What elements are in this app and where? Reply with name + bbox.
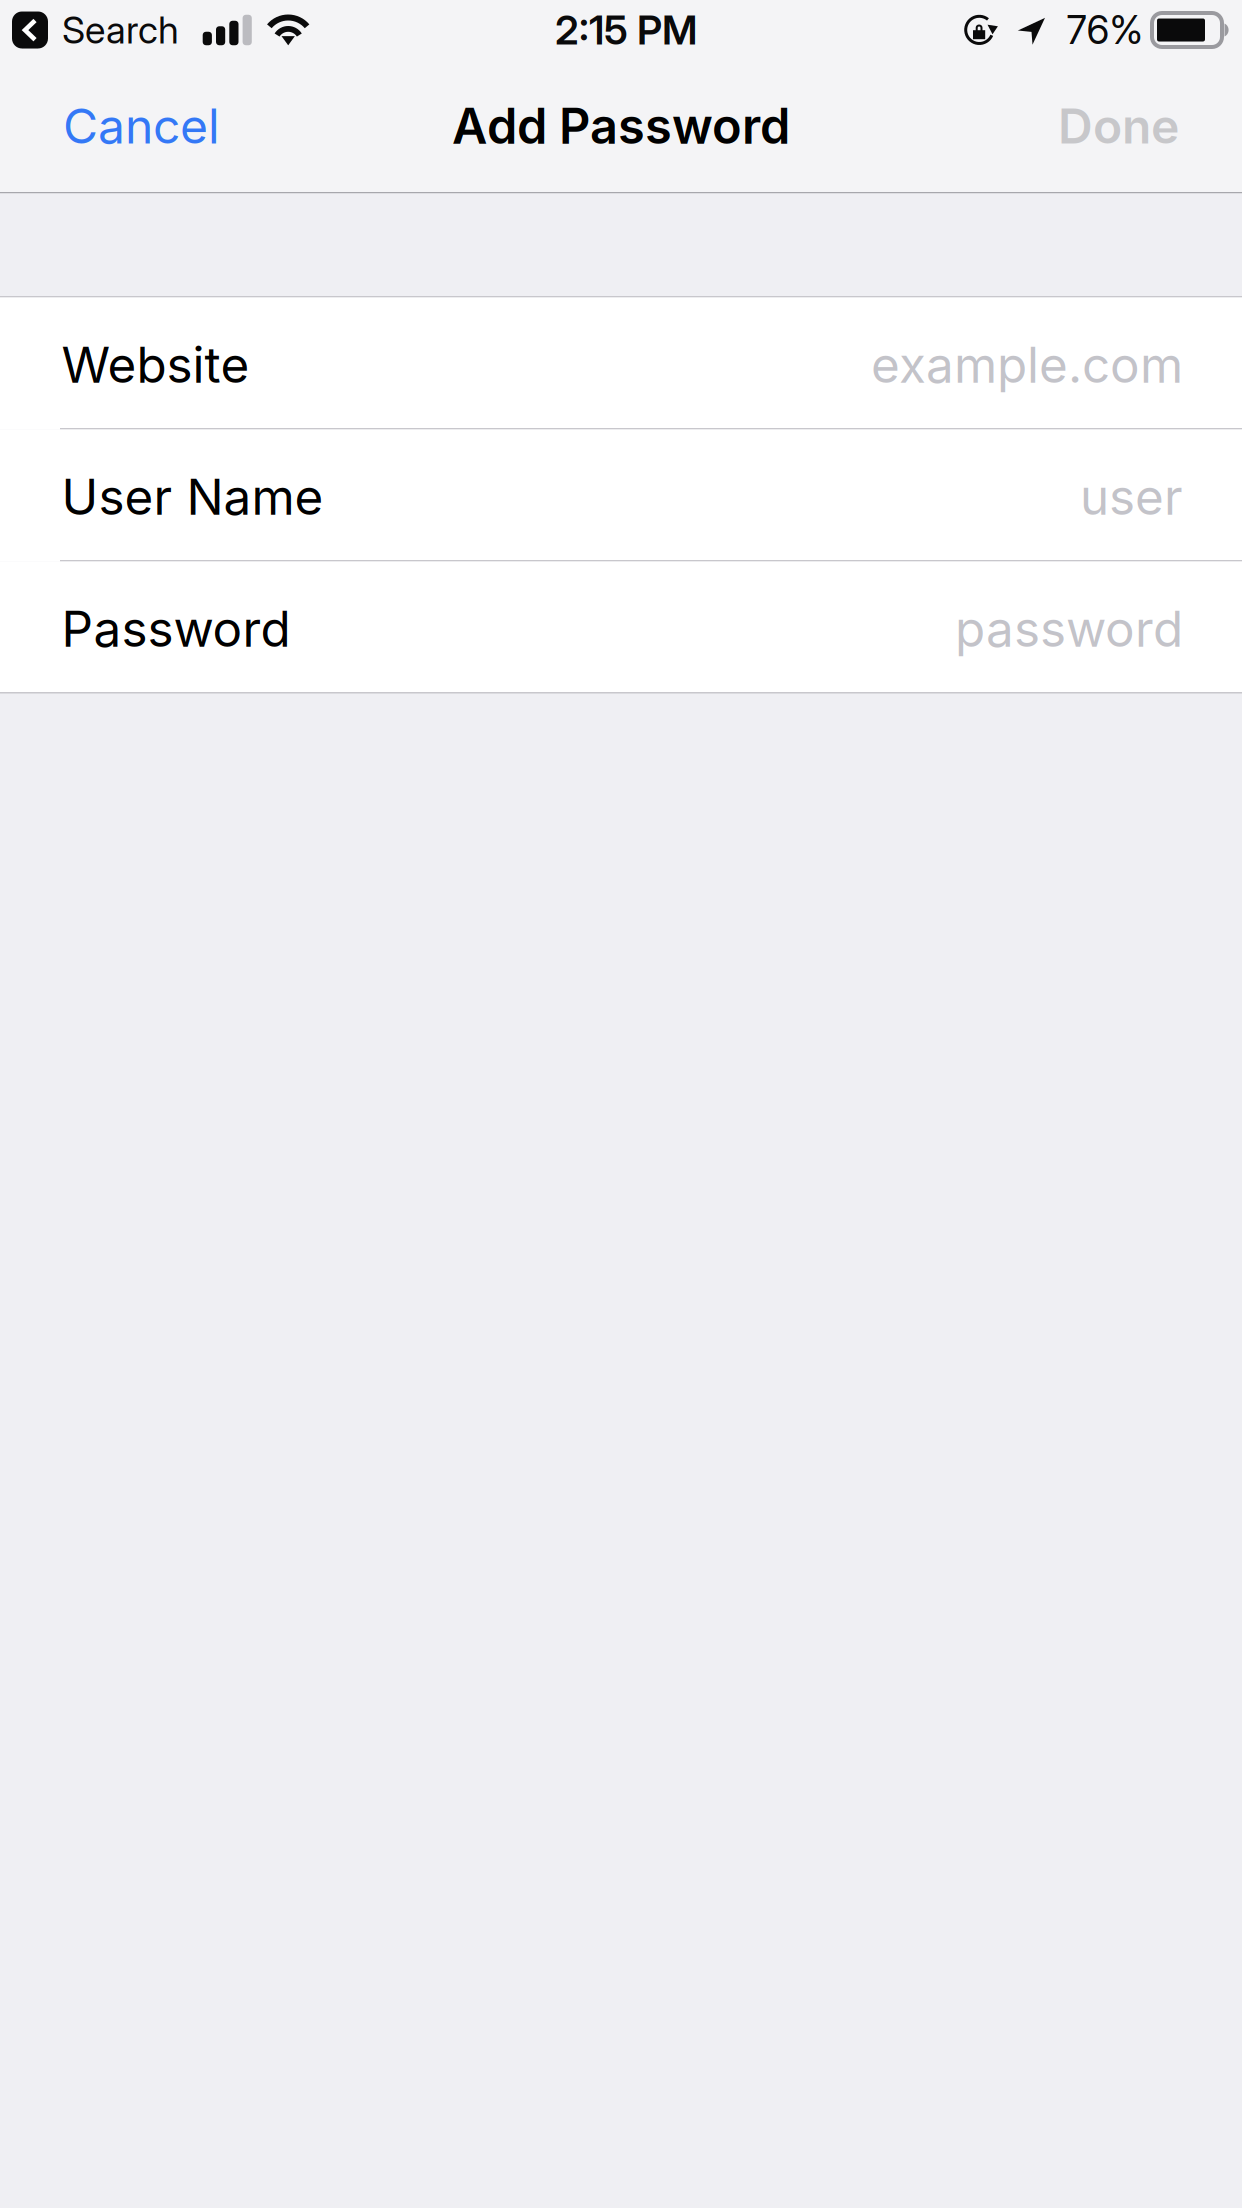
button[interactable]: User Name bbox=[0, 429, 1242, 560]
staticText: 2:15 PM bbox=[555, 6, 697, 54]
staticText: 76% bbox=[1066, 7, 1143, 53]
button[interactable]: Cancel bbox=[43, 60, 240, 192]
staticText: Done bbox=[1058, 97, 1179, 155]
staticText: user bbox=[1080, 467, 1183, 527]
staticText: Add Password bbox=[452, 97, 790, 155]
staticText: Search bbox=[62, 7, 179, 53]
button[interactable]: Password bbox=[0, 561, 1242, 692]
staticText: User Name bbox=[61, 467, 323, 527]
staticText: Website bbox=[61, 335, 249, 395]
button[interactable]: Done bbox=[1038, 60, 1199, 192]
staticText: example.com bbox=[871, 335, 1183, 395]
button[interactable]: Back to Search bbox=[12, 7, 179, 53]
staticText: Cancel bbox=[63, 97, 220, 155]
button[interactable]: Website bbox=[0, 297, 1242, 428]
staticText: password bbox=[955, 599, 1183, 659]
staticText: Password bbox=[61, 599, 290, 659]
